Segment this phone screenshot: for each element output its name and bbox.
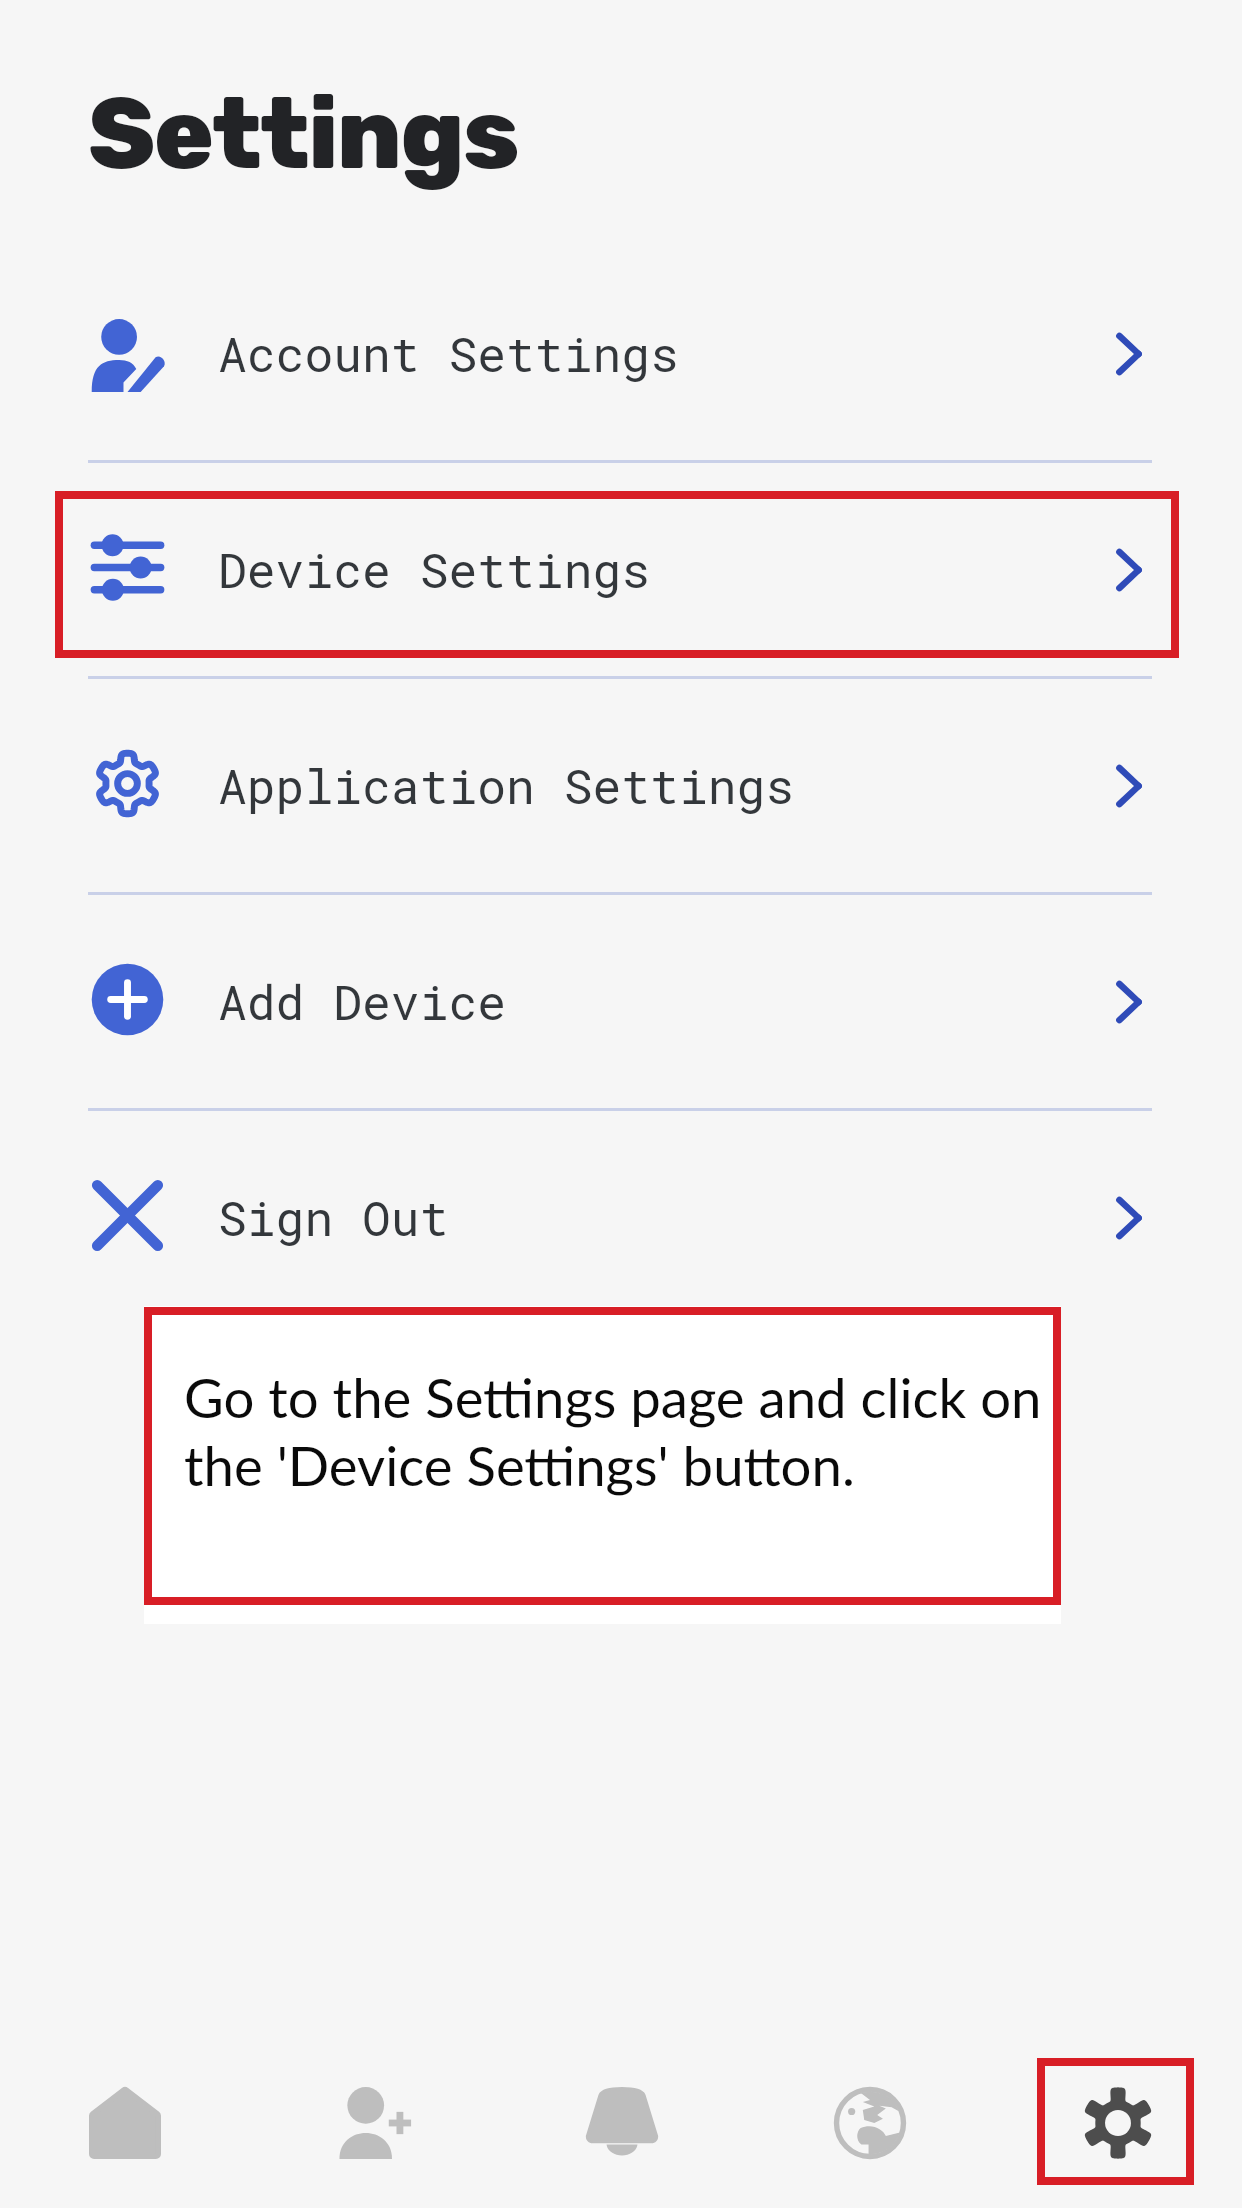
staticText: Account Settings: [218, 322, 679, 385]
button[interactable]: Application Settings: [0, 679, 1242, 892]
staticText: Device Settings: [218, 538, 651, 601]
button[interactable]: Sign Out: [0, 1111, 1242, 1324]
button[interactable]: Account Settings: [0, 247, 1242, 460]
staticText: Add Device: [218, 970, 507, 1033]
staticText: Sign Out: [218, 1186, 449, 1249]
button[interactable]: Add person: [249, 2038, 498, 2208]
staticText: Settings: [88, 75, 518, 192]
button[interactable]: Device Settings: [0, 463, 1242, 676]
staticText: Application Settings: [218, 754, 795, 817]
button[interactable]: Settings: [994, 2038, 1242, 2208]
button[interactable]: Explore: [746, 2038, 994, 2208]
staticText: Go to the Settings page and click on the…: [184, 1364, 1064, 1498]
button[interactable]: Add Device: [0, 895, 1242, 1108]
button[interactable]: Notifications: [498, 2038, 746, 2208]
button[interactable]: Home: [0, 2038, 249, 2208]
